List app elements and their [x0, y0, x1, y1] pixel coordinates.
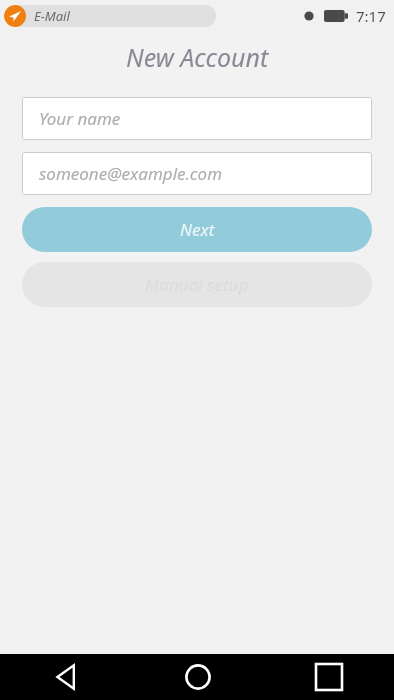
button[interactable]: Back — [0, 654, 132, 700]
button[interactable]: someone@example.com — [22, 152, 372, 195]
button[interactable]: Next — [22, 207, 372, 252]
staticText: Manual setup — [145, 273, 249, 296]
staticText: Your name — [39, 107, 121, 130]
staticText: 7:17 — [356, 6, 386, 26]
staticText: Next — [180, 218, 215, 241]
button[interactable]: Home — [132, 654, 263, 700]
button[interactable]: Recent apps — [263, 654, 394, 700]
staticText: someone@example.com — [39, 162, 223, 185]
staticText: New Account — [126, 40, 269, 74]
button[interactable]: Your name — [22, 97, 372, 140]
staticText: E-Mail — [34, 7, 70, 25]
